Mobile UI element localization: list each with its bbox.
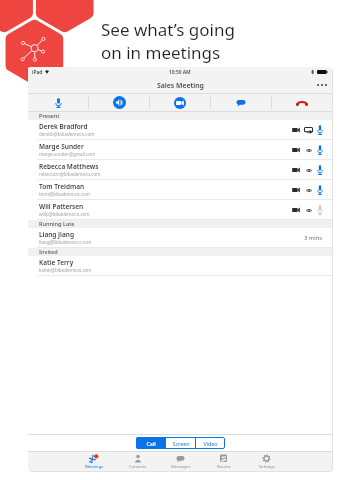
staticText: Sales Meeting [157,81,204,90]
staticText: Screen [172,440,190,447]
button[interactable]: Marge Sunder [28,140,332,160]
staticText: Messages [171,464,191,470]
staticText: on in meetings [101,41,221,64]
staticText: willp@bibademoco.com [39,211,90,217]
staticText: iPad [32,69,43,76]
button[interactable]: Katie Terry [28,256,332,276]
staticText: 10:50 AM [169,69,191,76]
staticText: tomt@bibademoco.com [39,191,90,197]
staticText: Katie Terry [39,258,74,267]
button[interactable]: Speaker [89,94,149,111]
staticText: Meetings [85,464,104,470]
staticText: marge.sunder@gmail.com [39,151,96,157]
button[interactable]: Mute microphone [28,94,88,111]
button[interactable]: Screen [166,437,195,449]
button[interactable]: Meetings [73,452,116,471]
button[interactable]: Rooms [202,452,245,471]
staticText: liangj@bibademoco.com [39,239,92,245]
button[interactable]: Settings [245,452,288,471]
button[interactable]: Call [136,437,165,449]
staticText: rebeccam@bibademoco.com [39,171,101,177]
button[interactable]: Will Pattersen [28,200,332,220]
staticText: Rooms [217,464,231,470]
staticText: Liang Jiang [39,230,74,239]
staticText: derekb@bibademoco.com [39,131,95,137]
button[interactable]: Contacts [116,452,159,471]
staticText: katiet@bibademoco.com [39,267,92,273]
button[interactable]: End call [272,94,332,111]
staticText: Contacts [129,464,147,470]
staticText: 3 mins [304,234,323,242]
staticText: Rebecca Matthews [39,162,99,171]
staticText: Marge Sunder [39,142,84,151]
button[interactable]: Video [196,437,225,449]
staticText: See what’s going [101,18,235,41]
button[interactable]: Rebecca Matthews [28,160,332,180]
button[interactable]: Messages [159,452,202,471]
button[interactable]: Video [150,94,210,111]
staticText: Invited [39,248,58,256]
staticText: Call [146,440,156,447]
staticText: Present [39,112,60,120]
staticText: Running Late [39,220,75,228]
button[interactable]: More options [312,77,332,93]
button[interactable]: Derek Bradford [28,120,332,140]
staticText: Video [203,440,218,447]
staticText: Derek Bradford [39,122,88,131]
staticText: Tom Treidman [39,182,85,191]
staticText: Will Pattersen [39,202,84,211]
button[interactable]: Liang Jiang [28,228,332,248]
button[interactable]: Chat [211,94,271,111]
button[interactable]: Tom Treidman [28,180,332,200]
staticText: Settings [259,464,275,470]
